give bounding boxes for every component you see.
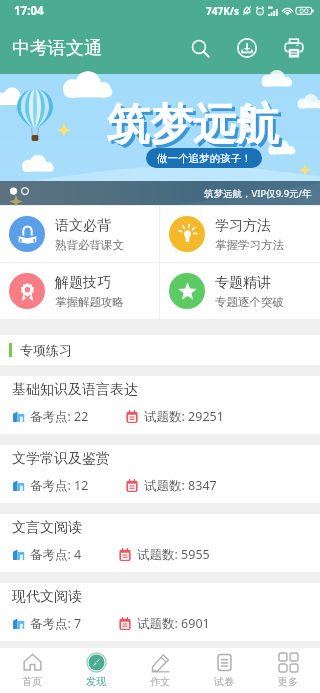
staticText: 筑梦远航，VIP仅9.9元/年 bbox=[204, 187, 312, 200]
button[interactable]: Print bbox=[276, 30, 312, 66]
button[interactable]: 解题技巧 bbox=[0, 263, 159, 319]
staticText: 熟背必背课文 bbox=[55, 238, 124, 252]
staticText: 文学常识及鉴赏 bbox=[12, 450, 110, 468]
staticText: 作文 bbox=[150, 675, 170, 688]
staticText: 备考点: 4 bbox=[30, 546, 82, 563]
staticText: 试题数: 8347 bbox=[144, 477, 217, 494]
button[interactable]: Download bbox=[229, 30, 265, 66]
staticText: 专项练习 bbox=[20, 342, 72, 358]
staticText: 现代文阅读 bbox=[12, 588, 82, 606]
staticText: 17:04 bbox=[14, 3, 44, 19]
button[interactable]: 更多 bbox=[256, 648, 320, 693]
staticText: 747K/s bbox=[206, 4, 239, 18]
staticText: 掌握解题攻略 bbox=[55, 295, 124, 309]
button[interactable]: 学习方法 bbox=[160, 206, 320, 262]
staticText: 做一个追梦的孩子！ bbox=[157, 152, 252, 165]
staticText: 试题数: 5955 bbox=[137, 546, 210, 563]
button[interactable]: Search bbox=[182, 30, 218, 66]
button[interactable]: 文学常识及鉴赏 bbox=[0, 445, 320, 503]
staticText: 试卷 bbox=[214, 675, 234, 688]
button[interactable]: 作文 bbox=[128, 648, 192, 693]
button[interactable]: 文言文阅读 bbox=[0, 514, 320, 572]
staticText: 试题数: 6901 bbox=[137, 615, 210, 632]
staticText: 筑梦远航 bbox=[107, 98, 279, 152]
staticText: 专题精讲 bbox=[215, 274, 271, 292]
staticText: 筑梦远航 bbox=[110, 101, 282, 155]
staticText: 更多 bbox=[278, 675, 298, 688]
button[interactable]: 语文必背 bbox=[0, 206, 159, 262]
staticText: 学习方法 bbox=[215, 217, 271, 235]
button[interactable]: 试卷 bbox=[192, 648, 256, 693]
button[interactable]: 发现 bbox=[64, 648, 128, 693]
button[interactable]: 基础知识及语言表达 bbox=[0, 376, 320, 434]
staticText: 试题数: 29251 bbox=[144, 408, 224, 425]
staticText: 备考点: 7 bbox=[30, 615, 82, 632]
button[interactable]: 筑梦远航 bbox=[0, 74, 320, 205]
staticText: 掌握学习方法 bbox=[215, 238, 284, 252]
staticText: 备考点: 22 bbox=[30, 408, 89, 425]
staticText: 语文必背 bbox=[55, 217, 111, 235]
staticText: 首页 bbox=[22, 675, 42, 688]
staticText: 发现 bbox=[86, 675, 106, 688]
button[interactable]: 专题精讲 bbox=[160, 263, 320, 319]
button[interactable]: 现代文阅读 bbox=[0, 583, 320, 641]
staticText: 备考点: 12 bbox=[30, 477, 89, 494]
staticText: 文言文阅读 bbox=[12, 519, 82, 537]
staticText: 中考语文通 bbox=[12, 37, 102, 60]
button[interactable]: 首页 bbox=[0, 648, 64, 693]
staticText: 专题逐个突破 bbox=[215, 295, 284, 309]
staticText: 解题技巧 bbox=[55, 274, 111, 292]
staticText: 基础知识及语言表达 bbox=[12, 381, 138, 399]
